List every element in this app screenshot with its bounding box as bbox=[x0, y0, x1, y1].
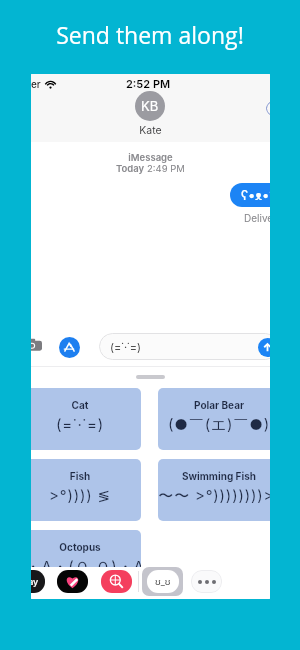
button[interactable]: Camera bbox=[31, 336, 42, 355]
staticText: iMessage bbox=[31, 152, 270, 163]
staticText: Cat bbox=[31, 399, 141, 411]
staticText: (=˙·˙=) bbox=[31, 415, 141, 433]
button[interactable]: Digital Touch bbox=[57, 570, 88, 593]
button[interactable]: Kaomoji bbox=[142, 567, 183, 596]
button[interactable]: Polar Bear bbox=[158, 388, 270, 450]
button[interactable]: Swimming Fish bbox=[158, 459, 270, 521]
staticText: er bbox=[31, 78, 41, 90]
staticText: Send them along! bbox=[0, 19, 300, 50]
staticText: 〜〜 >°))))))))><< bbox=[158, 486, 270, 505]
staticText: Octopus bbox=[31, 541, 141, 553]
staticText: Polar Bear bbox=[158, 399, 270, 411]
staticText: (●￣(エ)￣●) bbox=[158, 415, 270, 434]
button[interactable]: Apple Pay bbox=[31, 570, 45, 593]
staticText: KB bbox=[141, 98, 159, 114]
staticText: (=˙·˙=) bbox=[110, 340, 142, 353]
button[interactable]: Search bbox=[101, 570, 132, 593]
button[interactable]: Info bbox=[266, 101, 270, 116]
staticText: >°)))) ≶ bbox=[31, 486, 141, 504]
button[interactable]: Cat bbox=[31, 388, 141, 450]
button[interactable]: Send bbox=[258, 338, 270, 357]
staticText: Swimming Fish bbox=[158, 470, 270, 482]
button[interactable]: ʕ•ᴥ•ʔ bbox=[230, 183, 270, 207]
staticText: ʊ_ʊ bbox=[155, 576, 171, 587]
button[interactable]: Fish bbox=[31, 459, 141, 521]
staticText: Delivered bbox=[244, 212, 270, 224]
staticText: 2:52 PM bbox=[126, 77, 171, 90]
staticText: Fish bbox=[31, 470, 141, 482]
button[interactable]: Octopus bbox=[31, 530, 141, 592]
staticText: Pay bbox=[31, 576, 39, 587]
button[interactable]: (=˙·˙=) bbox=[99, 333, 270, 360]
staticText: 2:49 PM bbox=[147, 163, 185, 174]
staticText: Today bbox=[116, 163, 147, 174]
button[interactable]: Apps bbox=[59, 337, 80, 358]
button[interactable]: KB bbox=[135, 91, 165, 121]
staticText: (・Α・(Ｏ.Ｏ)・Α・) bbox=[31, 557, 141, 576]
staticText: ʕ•ᴥ•ʔ bbox=[241, 186, 270, 204]
button[interactable]: More apps bbox=[191, 570, 222, 593]
staticText: Kate bbox=[31, 124, 270, 137]
